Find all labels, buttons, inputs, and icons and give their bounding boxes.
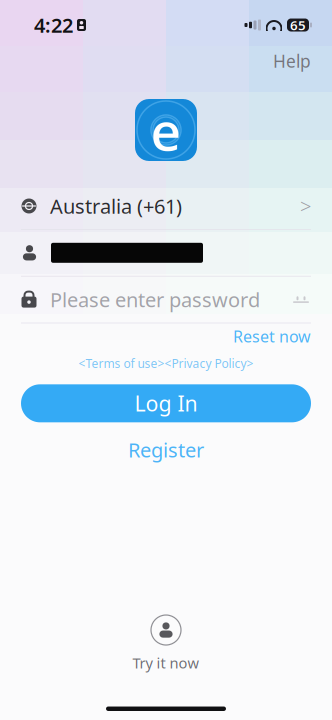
button[interactable]: Help: [265, 45, 319, 76]
button[interactable]: <Terms of use>: [78, 355, 164, 371]
staticText: 4:22: [34, 12, 73, 38]
staticText: 65: [290, 16, 306, 34]
button[interactable]: Try it now: [120, 610, 211, 676]
staticText: Register: [128, 436, 204, 463]
button[interactable]: Australia (+61): [0, 183, 332, 229]
staticText: >: [300, 193, 311, 219]
staticText: <Privacy Policy>: [164, 355, 253, 371]
button[interactable]: Reset now: [227, 322, 317, 351]
staticText: Australia (+61): [50, 193, 182, 219]
button[interactable]: Register: [114, 431, 218, 468]
button[interactable]: Log In: [21, 384, 311, 422]
staticText: Please enter password: [50, 286, 260, 313]
button[interactable]: <Privacy Policy>: [164, 355, 253, 371]
staticText: Help: [273, 49, 311, 72]
staticText: Reset now: [233, 326, 311, 347]
staticText: Log In: [134, 389, 197, 417]
button[interactable]: Show password: [286, 285, 316, 315]
staticText: <Terms of use>: [78, 355, 164, 371]
staticText: Try it now: [132, 653, 199, 672]
staticText: e: [150, 95, 181, 165]
